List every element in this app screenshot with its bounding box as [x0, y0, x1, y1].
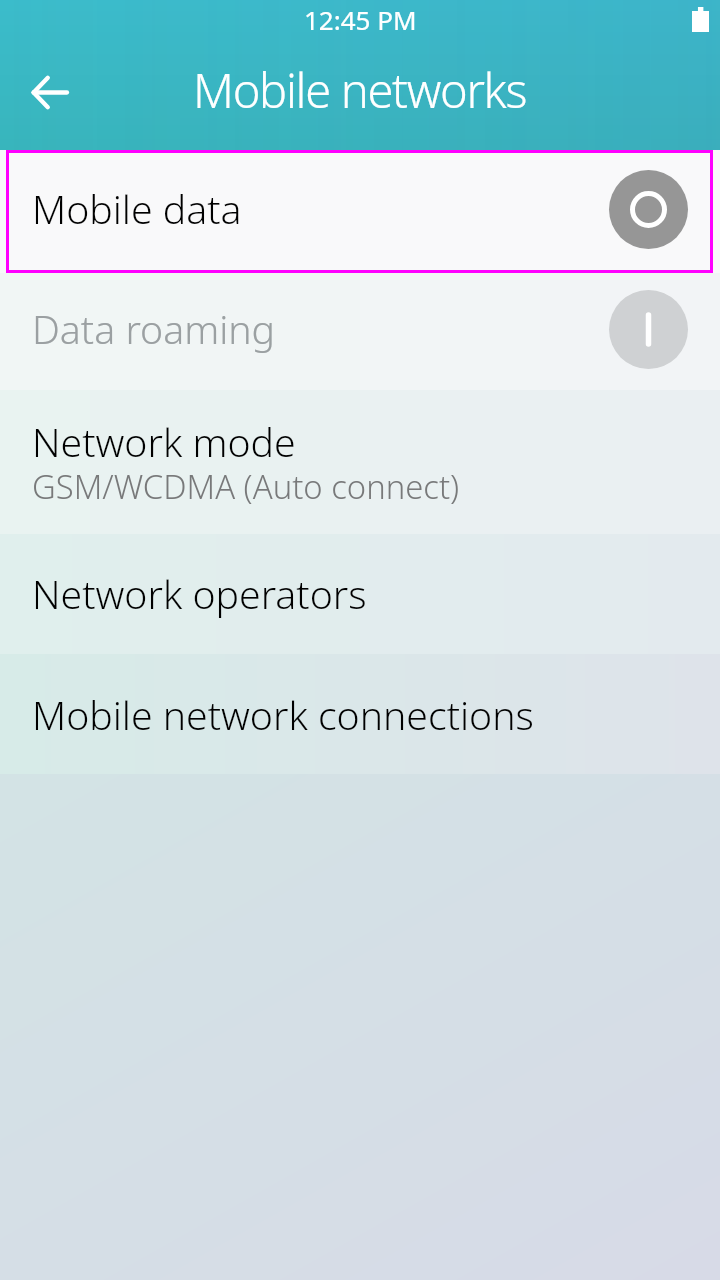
button[interactable]: Network operators: [0, 534, 720, 654]
staticText: 12:45 PM: [304, 2, 417, 37]
staticText: Network operators: [32, 567, 367, 620]
button[interactable]: Mobile network connections: [0, 654, 720, 774]
button[interactable]: Network mode: [0, 390, 720, 534]
staticText: Network mode: [32, 415, 296, 468]
button[interactable]: Data roaming: [0, 273, 720, 390]
staticText: Mobile networks: [193, 58, 527, 122]
staticText: Mobile data: [32, 182, 242, 235]
button[interactable]: Mobile data: [0, 150, 720, 273]
button[interactable]: Back: [13, 55, 87, 129]
staticText: Data roaming: [32, 302, 276, 355]
staticText: Mobile network connections: [32, 688, 534, 741]
staticText: GSM/WCDMA (Auto connect): [32, 464, 460, 509]
